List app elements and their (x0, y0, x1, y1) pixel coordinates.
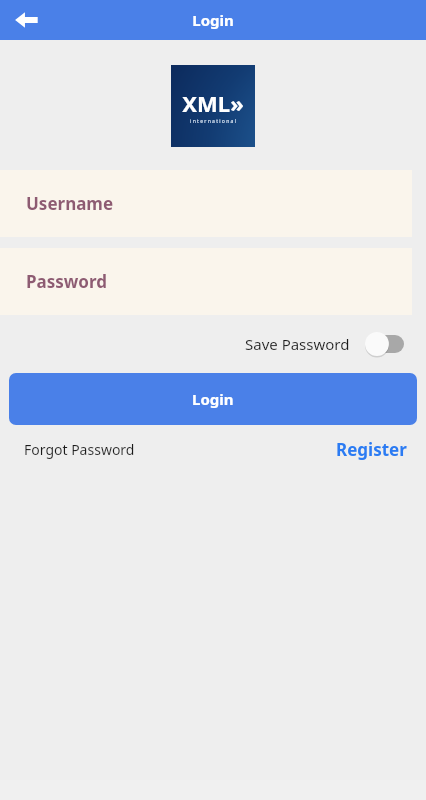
button[interactable]: Password (0, 248, 412, 315)
staticText: Login (192, 10, 234, 30)
button[interactable]: Save Password (245, 331, 404, 357)
button[interactable]: Register (336, 438, 407, 461)
staticText: Username (26, 192, 114, 215)
staticText: i n t e r n a t i o n a l (190, 118, 236, 125)
button[interactable]: Username (0, 170, 412, 237)
button[interactable]: Forgot Password (24, 440, 135, 459)
staticText: Forgot Password (24, 440, 135, 459)
staticText: Password (26, 270, 107, 293)
staticText: XML» (182, 88, 244, 118)
button[interactable]: Back (0, 0, 52, 40)
staticText: Register (336, 438, 407, 461)
staticText: Login (192, 389, 234, 409)
staticText: Save Password (245, 334, 350, 354)
button[interactable]: Login (9, 373, 417, 425)
